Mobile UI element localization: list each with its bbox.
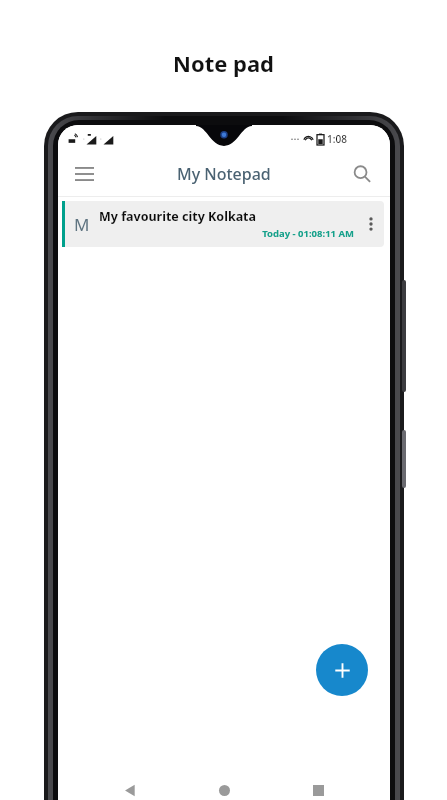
button[interactable]: Recents [296, 768, 340, 800]
button[interactable]: Back [108, 768, 152, 800]
button[interactable]: Add note [316, 644, 368, 696]
staticText: My Notepad [177, 163, 271, 185]
button[interactable]: M [62, 201, 384, 247]
staticText: My favourite city Kolkata [99, 208, 257, 225]
staticText: Today - 01:08:11 AM [99, 227, 354, 240]
button[interactable]: Home [202, 768, 246, 800]
button[interactable]: More options [358, 201, 384, 247]
button[interactable]: Search [342, 154, 382, 194]
staticText: M [74, 213, 90, 236]
staticText: 1:08 [327, 132, 347, 146]
button[interactable]: Menu [64, 154, 104, 194]
staticText: Note pad [173, 48, 275, 78]
